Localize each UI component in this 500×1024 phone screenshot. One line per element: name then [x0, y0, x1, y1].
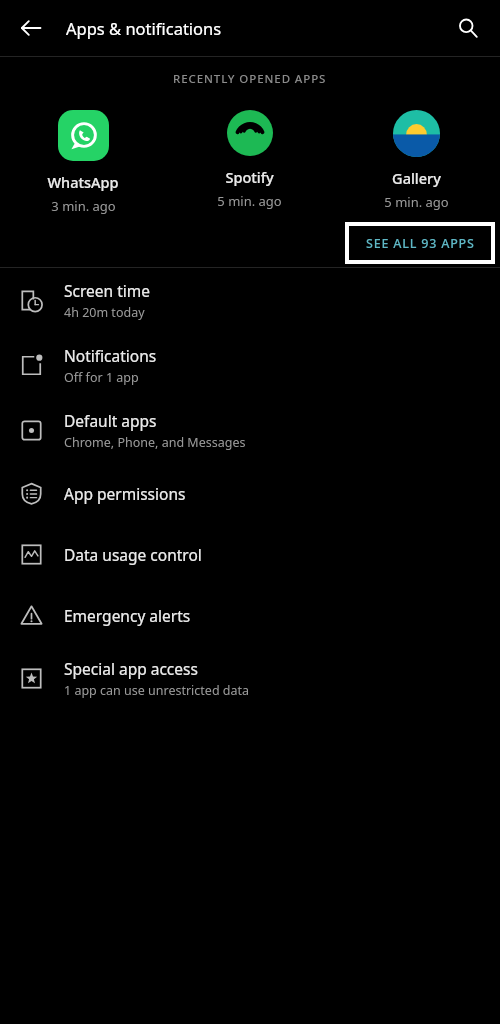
- button[interactable]: Back: [9, 6, 53, 50]
- staticText: WhatsApp: [47, 172, 119, 192]
- staticText: 5 min. ago: [217, 192, 282, 210]
- staticText: 3 min. ago: [51, 197, 116, 215]
- button[interactable]: WhatsApp: [0, 106, 166, 219]
- button[interactable]: Gallery: [333, 106, 500, 215]
- button[interactable]: Screen time: [0, 268, 500, 333]
- staticText: Emergency alerts: [64, 605, 191, 626]
- button[interactable]: App permissions: [0, 463, 500, 524]
- staticText: Default apps: [64, 410, 157, 431]
- button[interactable]: Spotify: [166, 106, 333, 214]
- staticText: 4h 20m today: [64, 304, 145, 321]
- button[interactable]: Special app access: [0, 646, 500, 711]
- button[interactable]: SEE ALL 93 APPS: [349, 226, 491, 260]
- staticText: Apps & notifications: [66, 17, 222, 39]
- button[interactable]: Search: [446, 6, 490, 50]
- button[interactable]: Default apps: [0, 398, 500, 463]
- staticText: Notifications: [64, 345, 157, 366]
- staticText: Special app access: [64, 658, 198, 679]
- staticText: Data usage control: [64, 544, 202, 565]
- staticText: RECENTLY OPENED APPS: [173, 71, 327, 87]
- staticText: Spotify: [225, 167, 274, 187]
- button[interactable]: Emergency alerts: [0, 585, 500, 646]
- staticText: 1 app can use unrestricted data: [64, 682, 250, 699]
- staticText: Off for 1 app: [64, 369, 139, 386]
- staticText: Gallery: [392, 168, 441, 188]
- button[interactable]: Notifications: [0, 333, 500, 398]
- staticText: 5 min. ago: [384, 193, 449, 211]
- staticText: Screen time: [64, 280, 150, 301]
- staticText: Chrome, Phone, and Messages: [64, 434, 246, 451]
- button[interactable]: Data usage control: [0, 524, 500, 585]
- staticText: App permissions: [64, 483, 186, 504]
- staticText: SEE ALL 93 APPS: [366, 235, 475, 252]
